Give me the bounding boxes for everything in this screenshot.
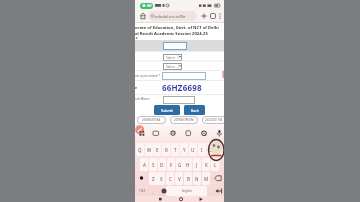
staticText: ode Mazen — [135, 97, 150, 101]
staticText: Y — [183, 147, 186, 153]
button[interactable]: N — [193, 172, 201, 185]
staticText: ?123 — [139, 189, 146, 193]
button[interactable]: C — [166, 172, 174, 185]
staticText: . — [211, 189, 213, 194]
staticText: D — [160, 162, 164, 168]
button[interactable]: F — [167, 158, 175, 171]
button[interactable]: P — [215, 143, 223, 156]
button[interactable]: Z — [149, 172, 157, 185]
button[interactable]: I — [198, 143, 206, 156]
staticText: F — [170, 162, 173, 168]
staticText: P — [218, 147, 221, 153]
staticText: , — [152, 189, 154, 194]
button[interactable]: R — [162, 143, 170, 156]
staticText: C — [169, 176, 172, 182]
button[interactable]: W — [145, 143, 153, 156]
staticText: S — [152, 162, 155, 168]
staticText: R — [165, 147, 168, 153]
button[interactable]: Q — [136, 143, 144, 156]
staticText: edudel.nic.in/Re — [155, 14, 186, 19]
staticText: W — [147, 147, 152, 153]
staticText: Q — [138, 147, 142, 153]
button[interactable]: English — [166, 186, 207, 196]
staticText: orate of Education, Govt. of NCT of Delh… — [135, 25, 224, 31]
button[interactable]: A — [140, 158, 148, 171]
staticText: English — [182, 189, 192, 193]
button[interactable]: Select — [164, 55, 181, 60]
staticText: Z — [152, 176, 155, 182]
button[interactable]: U — [189, 143, 197, 156]
staticText: e — [135, 85, 138, 90]
button[interactable]: Back — [184, 105, 205, 115]
staticText: X — [160, 176, 163, 182]
staticText: N — [195, 176, 199, 182]
staticText: 66HZ6698 — [162, 82, 216, 93]
staticText: K — [205, 162, 208, 168]
staticText: I — [201, 147, 203, 153]
staticText: Back — [191, 108, 199, 113]
staticText: O — [209, 147, 213, 153]
button[interactable]: H — [184, 158, 192, 171]
button[interactable]: K — [202, 158, 210, 171]
button[interactable]: L — [211, 158, 219, 171]
button[interactable]: G — [176, 158, 184, 171]
button[interactable]: Y — [180, 143, 188, 156]
staticText: M — [204, 176, 209, 182]
staticText: J — [196, 162, 198, 168]
staticText: 20TR30785056 — [174, 118, 194, 122]
button[interactable]: M — [202, 172, 210, 185]
button[interactable]: O — [207, 143, 215, 156]
staticText: Select — [166, 65, 175, 69]
staticText: al Result Academic Session 2024-25 — [135, 31, 224, 37]
button[interactable]: . — [209, 186, 214, 196]
button[interactable]: Submit — [154, 105, 180, 115]
button[interactable]: ?123 — [136, 186, 148, 196]
button[interactable]: , — [150, 186, 156, 196]
staticText: me as per wizzez) * — [135, 74, 161, 78]
staticText: 233/2021/58 — [205, 118, 223, 122]
staticText: G — [178, 162, 182, 168]
staticText: E — [156, 147, 159, 153]
button[interactable]: D — [158, 158, 166, 171]
button[interactable]: Select — [164, 64, 181, 69]
staticText: T — [174, 147, 177, 153]
button[interactable]: T — [171, 143, 179, 156]
button[interactable] — [140, 3, 153, 9]
button[interactable]: E — [153, 143, 161, 156]
staticText: U — [191, 147, 195, 153]
staticText: B — [187, 176, 190, 182]
button[interactable]: 20TR30785056 — [171, 117, 197, 123]
staticText: Select — [166, 56, 175, 60]
button[interactable]: B — [184, 172, 192, 185]
staticText: L — [214, 162, 217, 168]
staticText: A — [143, 162, 146, 168]
button[interactable]: 20560667584 — [138, 117, 165, 123]
button[interactable]: X — [157, 172, 165, 185]
button[interactable]: 233/2021/58 — [203, 117, 224, 123]
button[interactable]: edudel.nic.in/Re — [148, 11, 197, 21]
staticText: V — [178, 176, 181, 182]
staticText: 20560667584 — [142, 118, 161, 122]
button[interactable]: V — [175, 172, 183, 185]
staticText: H — [186, 162, 190, 168]
button[interactable]: J — [193, 158, 201, 171]
button[interactable]: S — [149, 158, 157, 171]
staticText: Submit — [161, 108, 173, 113]
